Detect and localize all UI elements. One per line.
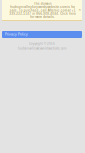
- button[interactable]: Dismiss notice: [77, 7, 82, 12]
- staticText: Copyright © 2016: [29, 42, 55, 45]
- staticText: ×: [78, 7, 80, 12]
- staticText: Privacy Policy: [5, 33, 28, 36]
- staticText: The domain hudsonvalleykeywordswebsite.c…: [9, 2, 76, 19]
- button[interactable]: Privacy Policy: [2, 31, 82, 38]
- staticText: hudsonvalleykeywordswebsite.com: [18, 47, 66, 50]
